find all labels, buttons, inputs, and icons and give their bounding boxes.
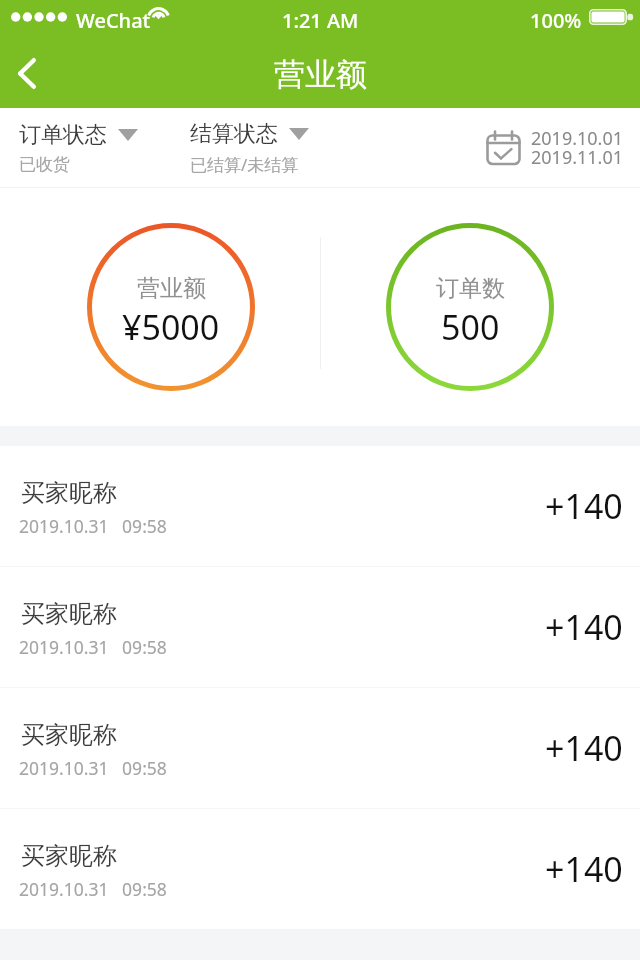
staticText: 订单状态 xyxy=(19,121,107,149)
staticText: 2019.10.31 09:58 xyxy=(19,756,167,780)
staticText: 买家昵称 xyxy=(21,599,117,629)
staticText: +140 xyxy=(545,604,623,650)
button[interactable]: 买家昵称 xyxy=(0,809,640,929)
staticText: 2019.11.01 xyxy=(531,145,624,170)
button[interactable]: 买家昵称 xyxy=(0,446,640,566)
button[interactable]: 结算状态 xyxy=(190,120,309,176)
staticText: 买家昵称 xyxy=(21,478,117,508)
staticText: 已结算/未结算 xyxy=(190,153,299,176)
button[interactable]: Back xyxy=(0,40,54,108)
staticText: 500 xyxy=(441,304,500,350)
button[interactable]: 买家昵称 xyxy=(0,567,640,687)
staticText: +140 xyxy=(545,725,623,771)
staticText: 1:21 AM xyxy=(282,7,359,34)
staticText: 买家昵称 xyxy=(21,841,117,871)
staticText: +140 xyxy=(545,483,623,529)
staticText: 结算状态 xyxy=(190,120,278,148)
staticText: 订单数 xyxy=(436,274,505,303)
staticText: 营业额 xyxy=(274,55,367,94)
staticText: 2019.10.31 09:58 xyxy=(19,635,167,659)
staticText: 营业额 xyxy=(137,274,206,303)
staticText: 2019.10.31 09:58 xyxy=(19,514,167,538)
button[interactable]: 2019.10.01 xyxy=(486,122,624,176)
staticText: 2019.10.31 09:58 xyxy=(19,877,167,901)
staticText: 2019.10.01 xyxy=(531,126,624,151)
staticText: 买家昵称 xyxy=(21,720,117,750)
button[interactable]: 买家昵称 xyxy=(0,688,640,808)
button[interactable]: 订单状态 xyxy=(19,121,138,175)
staticText: ¥5000 xyxy=(122,304,220,350)
staticText: WeChat xyxy=(76,7,151,34)
staticText: 100% xyxy=(530,7,582,34)
staticText: +140 xyxy=(545,846,623,892)
staticText: 已收货 xyxy=(19,154,70,175)
